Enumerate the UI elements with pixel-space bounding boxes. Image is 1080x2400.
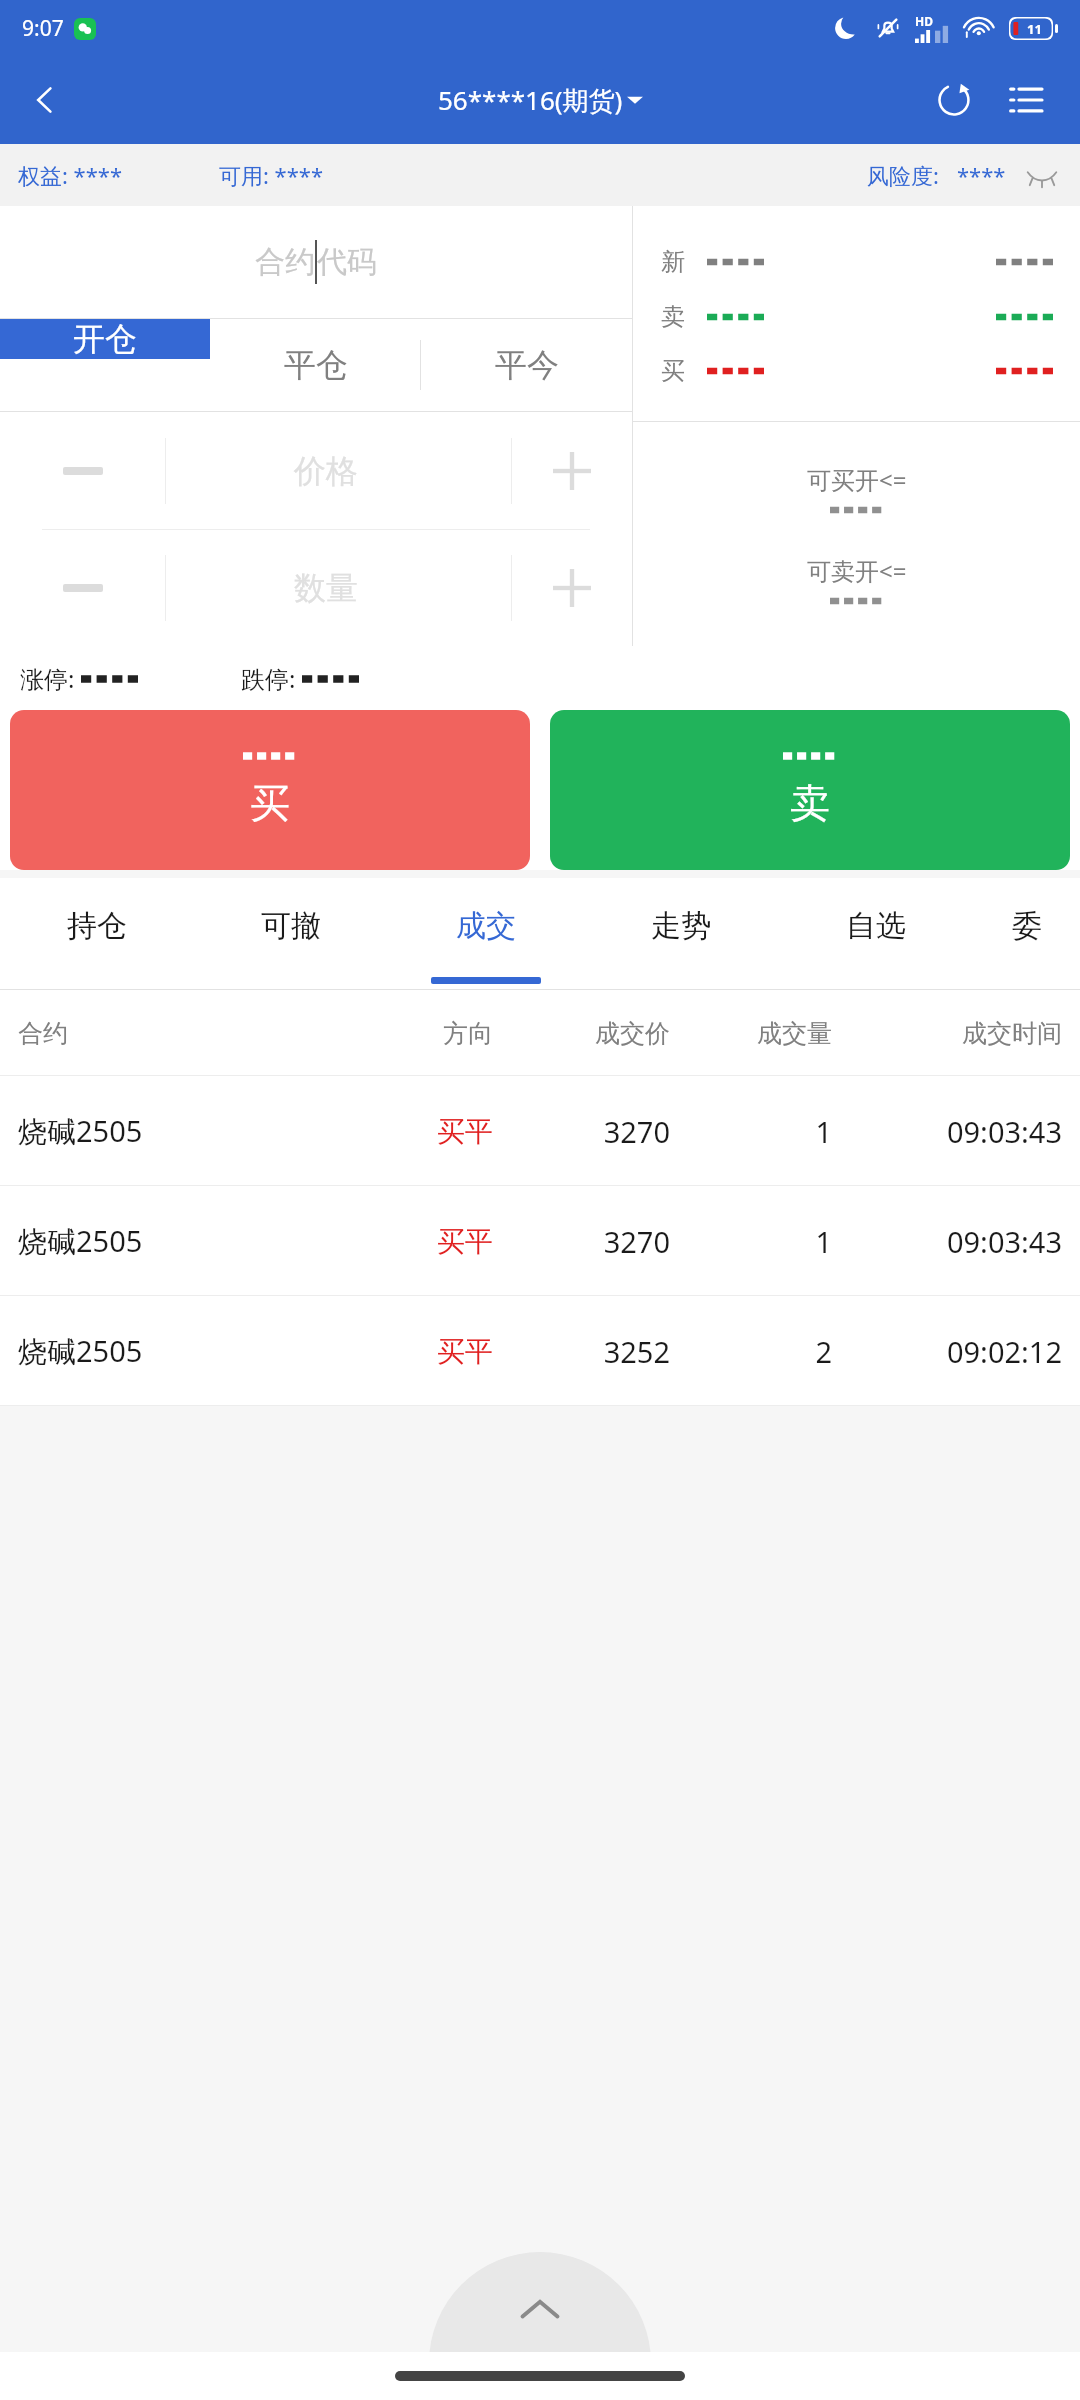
staticText: 买 [250,778,290,828]
button[interactable]: Decrease 价格 [0,412,165,529]
button[interactable]: 合约 [0,206,632,318]
button[interactable]: 烧碱2505 [0,1076,1080,1186]
staticText: 可用: **** [219,160,324,190]
staticText: 走势 [651,907,711,945]
button[interactable]: 平仓 [210,319,421,411]
button[interactable]: Increase 数量 [512,530,632,646]
button[interactable]: 卖 [550,710,1070,870]
staticText: 09:03:43 [832,1222,1062,1261]
staticText: 平仓 [284,345,348,385]
staticText: 跌停: [241,662,296,695]
staticText: 持仓 [67,907,127,945]
button[interactable]: Toggle visibility [1022,155,1062,195]
staticText: 买平 [331,1224,493,1259]
staticText: 新 [661,247,685,277]
staticText: 涨停: [20,662,75,695]
staticText: 1 [670,1222,832,1261]
staticText: 可买开<= [807,463,907,496]
staticText: 风险度: [867,160,939,190]
staticText: 2 [670,1332,832,1371]
staticText: 烧碱2505 [18,1111,331,1151]
staticText: HD [915,13,933,29]
button[interactable]: 委 [973,878,1080,990]
staticText: 合约 [18,1018,331,1049]
staticText: 合约 [255,243,315,281]
staticText: 成交时间 [832,1018,1062,1049]
staticText: 买平 [331,1334,493,1369]
button[interactable]: Decrease 数量 [0,530,165,646]
staticText: 09:02:12 [832,1332,1062,1371]
button[interactable]: 可撤 [194,878,388,990]
staticText: 委 [1012,907,1042,945]
staticText: 数量 [294,568,358,608]
staticText: 成交 [456,907,516,945]
button[interactable]: Increase 价格 [512,412,632,529]
staticText: 买平 [331,1114,493,1149]
button[interactable]: 56****16(期货) [438,82,643,118]
staticText: 价格 [294,451,358,491]
staticText: 9:07 [22,14,64,43]
staticText: 56****16(期货) [438,82,623,118]
button[interactable]: 成交 [388,878,583,990]
staticText: 09:03:43 [832,1112,1062,1151]
staticText: 3252 [493,1332,670,1371]
staticText: 3270 [493,1112,670,1151]
button[interactable]: Menu [992,66,1060,134]
staticText: 卖 [790,778,830,828]
staticText: 成交量 [670,1018,832,1049]
staticText: 卖 [661,302,685,332]
staticText: **** [957,160,1006,190]
staticText: 自选 [846,907,906,945]
staticText: 开仓 [73,319,137,359]
staticText: 代码 [317,243,377,281]
staticText: 方向 [331,1018,493,1049]
staticText: 11 [1027,20,1042,38]
staticText: 3270 [493,1222,670,1261]
button[interactable]: 烧碱2505 [0,1296,1080,1406]
button[interactable]: 烧碱2505 [0,1186,1080,1296]
staticText: 可卖开<= [807,554,907,587]
button[interactable]: 平今 [421,319,632,411]
button[interactable]: 走势 [583,878,778,990]
staticText: 烧碱2505 [18,1221,331,1261]
staticText: 1 [670,1112,832,1151]
button[interactable]: Refresh [920,66,988,134]
staticText: 成交价 [493,1018,670,1049]
button[interactable]: Back [0,56,90,144]
button[interactable]: 持仓 [0,878,194,990]
staticText: 烧碱2505 [18,1331,331,1371]
button[interactable]: 开仓 [0,319,210,359]
staticText: 可撤 [261,907,321,945]
staticText: 平今 [495,345,559,385]
staticText: 买 [661,356,685,386]
button[interactable]: 自选 [778,878,973,990]
staticText: 权益: **** [18,160,123,190]
button[interactable]: Expand panel [429,2252,651,2352]
button[interactable]: 买 [10,710,530,870]
